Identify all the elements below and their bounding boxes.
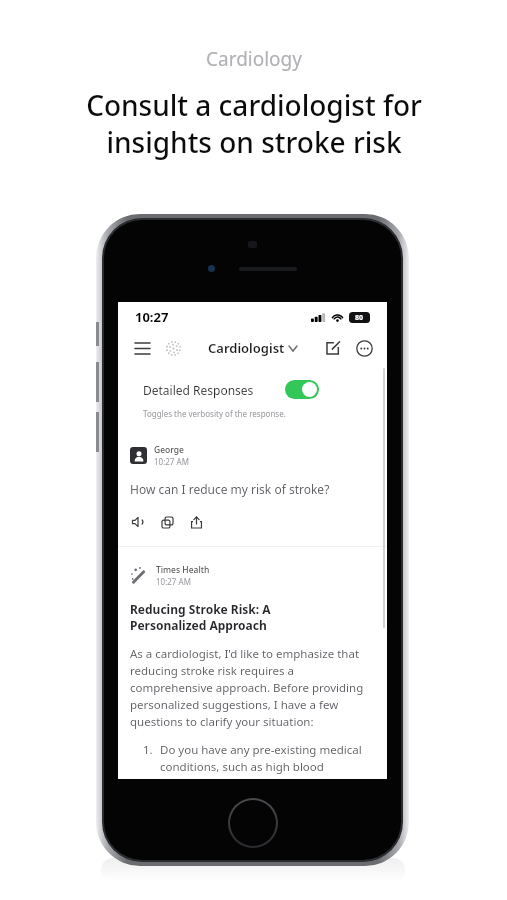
staticText: 10:27 (135, 308, 169, 326)
staticText: George (154, 444, 184, 456)
button[interactable]: Detailed Responses (130, 369, 332, 430)
button[interactable]: New chat (322, 337, 344, 359)
button[interactable]: Detailed Responses toggle (285, 380, 319, 399)
button[interactable]: Share (188, 514, 204, 530)
staticText: Times Health (156, 564, 210, 576)
staticText: Consult a cardiologist for insights on s… (86, 86, 422, 161)
staticText: 80 (355, 313, 364, 323)
button[interactable]: Copy (159, 514, 175, 530)
staticText: Reducing Stroke Risk: A Personalized App… (130, 601, 271, 634)
staticText: As a cardiologist, I'd like to emphasize… (130, 646, 364, 729)
staticText: How can I reduce my risk of stroke? (130, 481, 330, 497)
staticText: Toggles the verbosity of the response. (143, 408, 286, 419)
staticText: Detailed Responses (143, 382, 254, 398)
staticText: 1. (143, 742, 153, 758)
staticText: Do you have any pre-existing medical con… (160, 742, 375, 779)
button[interactable]: AI assistant (162, 337, 184, 359)
button[interactable]: Read aloud (130, 514, 146, 530)
staticText: Cardiology (206, 46, 302, 72)
staticText: 10:27 AM (156, 576, 191, 587)
button[interactable]: Cardiologist (208, 339, 297, 357)
button[interactable]: More options (354, 338, 374, 358)
staticText: Cardiologist (208, 339, 285, 357)
staticText: 10:27 AM (154, 456, 189, 467)
button[interactable]: Menu (131, 337, 153, 359)
